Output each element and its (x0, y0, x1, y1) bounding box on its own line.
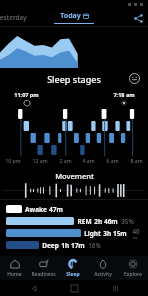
staticText: Explore (124, 271, 142, 278)
button[interactable]: Awake (6, 203, 142, 215)
button[interactable]: Activity (88, 256, 118, 280)
button[interactable]: Sleep (58, 256, 88, 280)
button[interactable]: Explore (118, 256, 148, 280)
staticText: 7:18 am (113, 91, 135, 98)
staticText: 6 am (106, 157, 119, 164)
button[interactable]: Yesterday (0, 11, 31, 24)
staticText: 12 am (32, 157, 48, 164)
staticText: Home (7, 271, 22, 278)
button[interactable]: Recents (108, 281, 122, 295)
staticText: 47m (49, 205, 63, 214)
button[interactable]: Home (0, 256, 29, 280)
staticText: 10 pm (5, 157, 21, 164)
staticText: 35% (121, 217, 134, 225)
staticText: Light (84, 229, 101, 238)
staticText: Deep (42, 241, 59, 250)
button[interactable]: REM (6, 215, 142, 227)
button[interactable]: Home (67, 281, 81, 295)
button[interactable]: Share (131, 11, 145, 25)
button[interactable]: Back (27, 281, 41, 295)
staticText: Yesterday (0, 13, 27, 22)
button[interactable]: Light (6, 227, 142, 239)
staticText: 40% (130, 227, 142, 239)
button[interactable]: Readiness (29, 256, 58, 280)
staticText: 2 am (59, 157, 72, 164)
staticText: Activity (94, 271, 112, 278)
staticText: Movement (55, 171, 94, 181)
staticText: 11:07 pm (14, 91, 39, 98)
button[interactable]: Deep (6, 239, 142, 251)
button[interactable]: Sleep score (127, 71, 142, 86)
button[interactable]: Today (54, 11, 94, 24)
staticText: 1h 17m (61, 241, 85, 250)
staticText: Awake (25, 205, 47, 214)
staticText: 4 am (82, 157, 95, 164)
staticText: 8 am (130, 157, 143, 164)
staticText: 16% (88, 241, 101, 249)
staticText: 3h 15m (103, 229, 127, 238)
staticText: 2h 46m (94, 217, 118, 226)
staticText: Sleep stages (47, 73, 101, 85)
staticText: Sleep (66, 271, 80, 278)
staticText: REM (77, 217, 92, 226)
staticText: Readiness (31, 271, 56, 278)
staticText: Today (60, 11, 81, 21)
